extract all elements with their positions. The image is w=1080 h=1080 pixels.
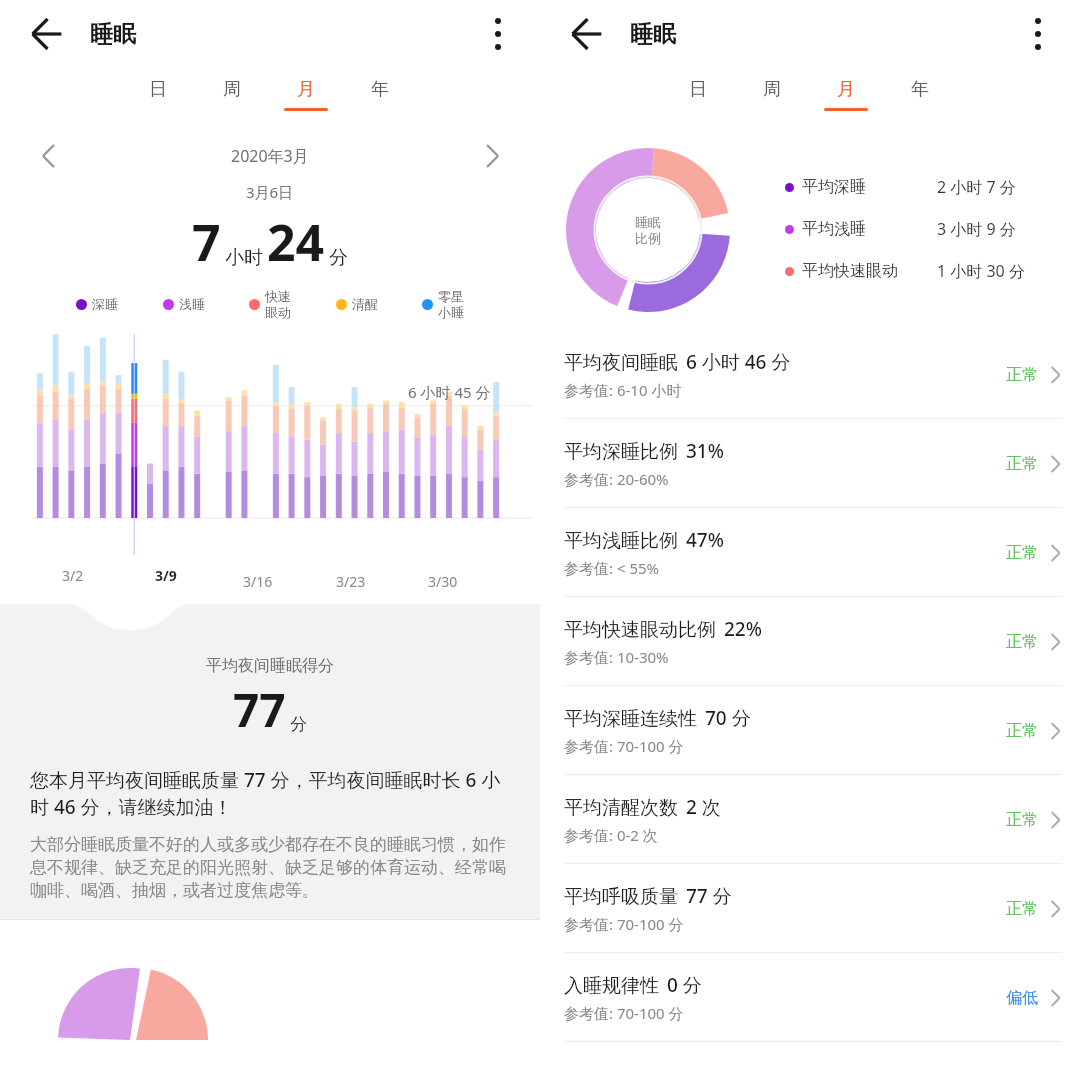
staticText: 参考值: 70-100 分 bbox=[564, 736, 684, 756]
button[interactable]: Previous month bbox=[26, 134, 70, 178]
staticText: 3/30 bbox=[428, 572, 458, 591]
staticText: 47% bbox=[686, 527, 724, 553]
staticText: 7 bbox=[192, 208, 221, 276]
button[interactable]: 周 bbox=[742, 68, 802, 130]
staticText: 参考值: 20-60% bbox=[564, 469, 669, 489]
staticText: 偏低 bbox=[1006, 988, 1038, 1008]
staticText: 参考值: 0-2 次 bbox=[564, 825, 658, 845]
staticText: 正常 bbox=[1006, 454, 1038, 474]
staticText: 周 bbox=[763, 78, 781, 101]
staticText: 正常 bbox=[1006, 721, 1038, 741]
staticText: 正常 bbox=[1006, 365, 1038, 385]
staticText: 参考值: 70-100 分 bbox=[564, 1003, 684, 1023]
staticText: 小时 bbox=[225, 246, 263, 270]
button[interactable]: More options bbox=[1016, 12, 1060, 56]
button[interactable]: 平均夜间睡眠 bbox=[540, 330, 1080, 419]
staticText: 大部分睡眠质量不好的人或多或少都存在不良的睡眠习惯，如作息不规律、缺乏充足的阳光… bbox=[30, 834, 510, 901]
staticText: 平均深睡比例 bbox=[564, 440, 678, 464]
staticText: 参考值: 6-10 小时 bbox=[564, 380, 682, 400]
staticText: 1 小时 30 分 bbox=[937, 260, 1025, 282]
staticText: 睡眠 bbox=[90, 20, 136, 49]
staticText: 入睡规律性 bbox=[564, 974, 659, 998]
staticText: 3 小时 9 分 bbox=[937, 218, 1016, 240]
staticText: 2 小时 7 分 bbox=[937, 176, 1016, 198]
staticText: 月 bbox=[297, 78, 315, 101]
button[interactable]: 平均深睡比例 bbox=[540, 419, 1080, 508]
staticText: 2 次 bbox=[686, 794, 721, 820]
staticText: 比例 bbox=[635, 230, 661, 246]
staticText: 24 bbox=[267, 208, 325, 276]
staticText: 平均夜间睡眠 bbox=[564, 351, 678, 375]
staticText: 平均浅睡 bbox=[802, 219, 866, 239]
staticText: 22% bbox=[724, 616, 762, 642]
staticText: 3/9 bbox=[155, 566, 177, 585]
staticText: 日 bbox=[149, 78, 167, 101]
staticText: 77 分 bbox=[686, 883, 732, 909]
button[interactable]: 入睡规律性 bbox=[540, 953, 1080, 1042]
staticText: 日 bbox=[689, 78, 707, 101]
button[interactable]: 平均呼吸质量 bbox=[540, 864, 1080, 953]
staticText: 参考值: < 55% bbox=[564, 558, 660, 578]
button[interactable]: 年 bbox=[350, 68, 410, 130]
staticText: 平均深睡 bbox=[802, 177, 866, 197]
staticText: 平均深睡连续性 bbox=[564, 707, 697, 731]
staticText: 31% bbox=[686, 438, 724, 464]
staticText: 2020年3月 bbox=[231, 145, 309, 167]
staticText: 眼动 bbox=[265, 304, 291, 320]
staticText: 分 bbox=[290, 714, 307, 735]
staticText: 平均浅睡比例 bbox=[564, 529, 678, 553]
button[interactable]: 月 bbox=[276, 68, 336, 130]
staticText: 年 bbox=[371, 78, 389, 101]
staticText: 睡眠 bbox=[635, 214, 661, 230]
staticText: 平均快速眼动比例 bbox=[564, 618, 716, 642]
staticText: 6 小时 46 分 bbox=[686, 349, 791, 375]
button[interactable]: 日 bbox=[668, 68, 728, 130]
staticText: 睡眠 bbox=[630, 20, 676, 49]
staticText: 浅睡 bbox=[179, 296, 205, 312]
staticText: 您本月平均夜间睡眠质量 77 分，平均夜间睡眠时长 6 小时 46 分，请继续加… bbox=[30, 767, 510, 820]
staticText: 正常 bbox=[1006, 810, 1038, 830]
staticText: 月 bbox=[837, 78, 855, 101]
button[interactable]: 平均快速眼动比例 bbox=[540, 597, 1080, 686]
staticText: 分 bbox=[329, 246, 348, 270]
staticText: 平均呼吸质量 bbox=[564, 885, 678, 909]
button[interactable]: 年 bbox=[890, 68, 950, 130]
staticText: 周 bbox=[223, 78, 241, 101]
staticText: 3/16 bbox=[243, 572, 273, 591]
button[interactable]: Back bbox=[562, 10, 610, 58]
staticText: 正常 bbox=[1006, 543, 1038, 563]
button[interactable]: 周 bbox=[202, 68, 262, 130]
staticText: 3/2 bbox=[62, 566, 84, 585]
button[interactable]: Next month bbox=[470, 134, 514, 178]
staticText: 平均夜间睡眠得分 bbox=[206, 656, 334, 676]
button[interactable]: 平均清醒次数 bbox=[540, 775, 1080, 864]
staticText: 0 分 bbox=[667, 972, 702, 998]
staticText: 平均清醒次数 bbox=[564, 796, 678, 820]
staticText: 70 分 bbox=[705, 705, 751, 731]
staticText: 3/23 bbox=[336, 572, 366, 591]
staticText: 平均快速眼动 bbox=[802, 261, 898, 281]
button[interactable]: Back bbox=[22, 10, 70, 58]
staticText: 零星 bbox=[438, 288, 464, 304]
staticText: 小睡 bbox=[438, 304, 464, 320]
button[interactable]: 月 bbox=[816, 68, 876, 130]
staticText: 正常 bbox=[1006, 899, 1038, 919]
staticText: 77 bbox=[233, 678, 286, 741]
staticText: 参考值: 70-100 分 bbox=[564, 914, 684, 934]
staticText: 6 小时 45 分 bbox=[408, 382, 491, 402]
button[interactable]: More options bbox=[476, 12, 520, 56]
staticText: 深睡 bbox=[92, 296, 118, 312]
staticText: 清醒 bbox=[352, 296, 378, 312]
staticText: 年 bbox=[911, 78, 929, 101]
button[interactable]: 平均深睡连续性 bbox=[540, 686, 1080, 775]
staticText: 快速 bbox=[265, 288, 291, 304]
staticText: 参考值: 10-30% bbox=[564, 647, 669, 667]
button[interactable]: 平均浅睡比例 bbox=[540, 508, 1080, 597]
staticText: 正常 bbox=[1006, 632, 1038, 652]
staticText: 3月6日 bbox=[246, 182, 294, 202]
button[interactable]: 日 bbox=[128, 68, 188, 130]
